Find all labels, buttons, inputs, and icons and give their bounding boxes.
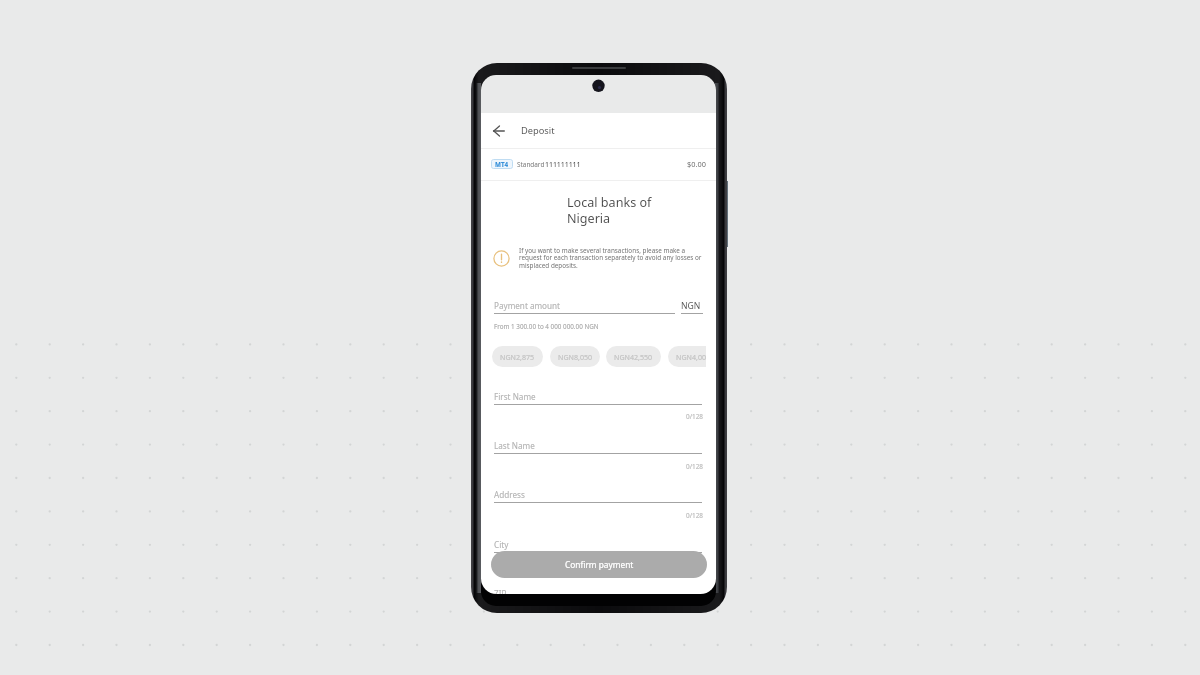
button[interactable]: NGN42,550 [606, 346, 661, 367]
staticText: 0/128 [686, 511, 703, 520]
staticText: NGN42,550 [614, 352, 653, 362]
staticText: Confirm payment [565, 559, 634, 570]
staticText: 111111111 [545, 160, 581, 169]
staticText: First Name [494, 391, 536, 402]
button[interactable]: MT4 [481, 148, 716, 180]
button[interactable]: Confirm payment [491, 551, 707, 578]
button[interactable]: Back [490, 122, 508, 140]
staticText: NGN2,875 [500, 352, 535, 362]
staticText: ZIP [494, 588, 507, 594]
staticText: $0.00 [687, 159, 706, 169]
staticText: 0/128 [686, 412, 703, 421]
button[interactable]: NGN8,050 [550, 346, 600, 367]
button[interactable]: NGN2,875 [492, 346, 543, 367]
staticText: NGN8,050 [558, 352, 593, 362]
staticText: Payment amount [494, 300, 561, 311]
staticText: NGN [681, 300, 701, 312]
staticText: NGN4,000 [676, 352, 706, 362]
staticText: Deposit [521, 124, 555, 137]
staticText: From 1 300.00 to 4 000 000.00 NGN [494, 322, 599, 331]
staticText: City [494, 539, 509, 550]
button[interactable]: NGN4,000 [668, 346, 706, 367]
staticText: MT4 [495, 160, 509, 169]
staticText: Local banks of Nigeria [567, 194, 662, 227]
staticText: 0/128 [686, 462, 703, 471]
staticText: Address [494, 489, 525, 500]
staticText: Last Name [494, 440, 535, 451]
staticText: Standard [517, 160, 545, 169]
staticText: If you want to make several transactions… [519, 246, 705, 270]
